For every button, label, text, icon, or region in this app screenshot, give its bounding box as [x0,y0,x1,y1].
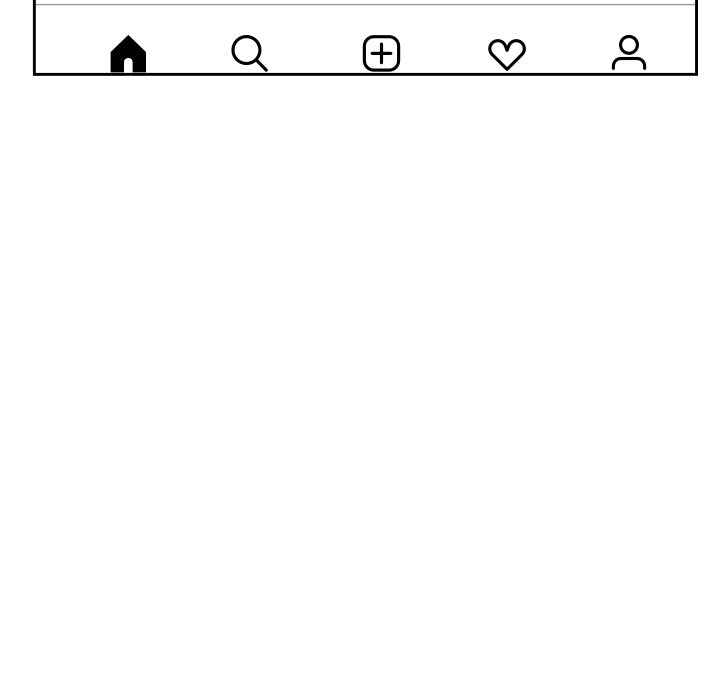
button[interactable]: Activity [459,5,555,73]
button[interactable]: Search [201,5,297,73]
button[interactable]: Profile [581,5,677,73]
button[interactable]: Create [334,5,429,73]
button[interactable]: Home [81,5,175,73]
